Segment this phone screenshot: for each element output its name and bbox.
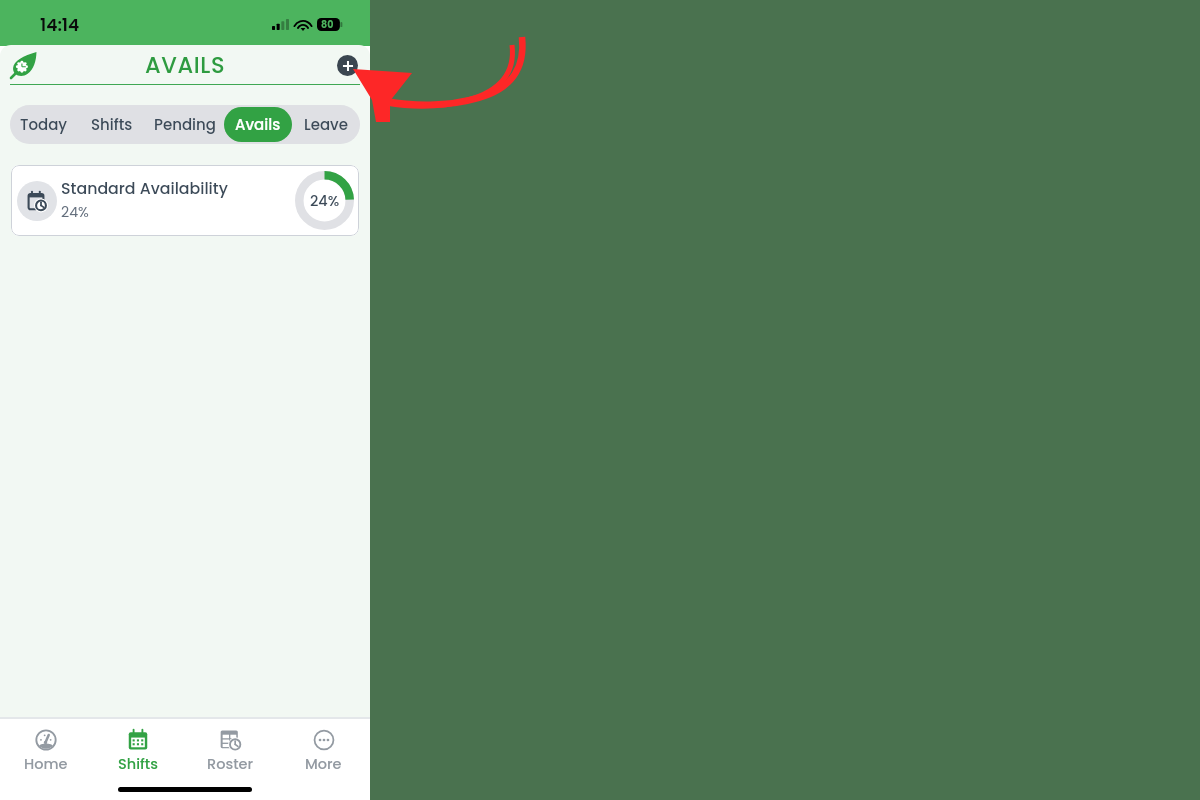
staticText: Today: [20, 114, 68, 135]
staticText: 14:14: [40, 13, 80, 37]
button[interactable]: App logo: [8, 49, 40, 81]
button[interactable]: Shifts: [78, 107, 146, 142]
button[interactable]: Pending: [146, 107, 224, 142]
staticText: Leave: [304, 114, 348, 135]
button[interactable]: More: [277, 719, 370, 776]
button[interactable]: Shifts: [92, 719, 184, 776]
button[interactable]: Today: [10, 107, 78, 142]
button[interactable]: Avails: [224, 107, 292, 142]
staticText: 24%: [61, 202, 89, 222]
staticText: Home: [24, 754, 68, 774]
button[interactable]: Home: [0, 719, 92, 776]
staticText: 80: [321, 18, 334, 31]
button[interactable]: Roster: [184, 719, 277, 776]
button[interactable]: Standard Availability: [11, 165, 359, 236]
button[interactable]: Leave: [292, 107, 360, 142]
staticText: Roster: [207, 754, 254, 774]
button[interactable]: Add availability: [337, 55, 358, 76]
staticText: AVAILS: [145, 49, 226, 80]
staticText: Shifts: [118, 754, 158, 774]
staticText: Avails: [235, 114, 281, 135]
staticText: Shifts: [91, 114, 133, 135]
staticText: Pending: [154, 114, 216, 135]
staticText: More: [305, 754, 342, 774]
staticText: Standard Availability: [61, 177, 228, 199]
staticText: 24%: [310, 191, 340, 211]
